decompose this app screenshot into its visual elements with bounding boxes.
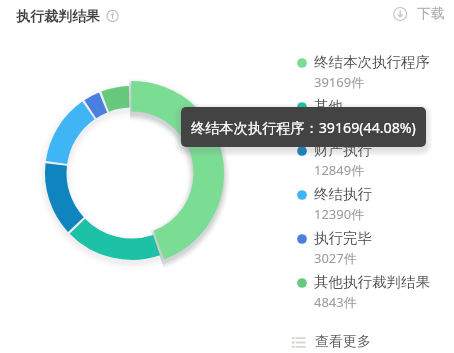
button[interactable]: 执行完毕 [289,228,449,272]
button[interactable]: Download [390,3,448,24]
button[interactable]: 其他执行裁判结果 [289,272,449,316]
staticText: 39169件 [314,73,365,91]
staticText: 3027件 [314,249,357,267]
staticText: 12849件 [314,161,365,179]
staticText: 终结执行 [314,185,372,203]
staticText: 终结本次执行程序 [314,53,430,71]
staticText: 财产执行 [314,141,372,159]
staticText: 执行完毕 [314,229,372,247]
button[interactable]: 执行裁判结果 [14,6,121,28]
button[interactable]: 终结本次执行程序 [289,52,449,96]
button[interactable]: 查看更多 [285,330,425,353]
staticText: 4843件 [314,293,357,311]
staticText: 其他 [314,97,343,115]
staticText: 12390件 [314,205,365,223]
staticText: 16581件 [314,117,365,135]
staticText: 终结本次执行程序：39169(44.08%) [191,118,416,137]
button[interactable]: 其他 [289,96,449,140]
button[interactable]: 终结执行 [289,184,449,228]
staticText: 下载 [417,5,445,22]
other: Info [107,10,119,22]
staticText: 其他执行裁判结果 [314,273,430,291]
button[interactable]: 财产执行 [289,140,449,184]
other: Download [393,7,407,21]
staticText: 查看更多 [315,333,371,351]
staticText: 执行裁判结果 [16,8,100,26]
